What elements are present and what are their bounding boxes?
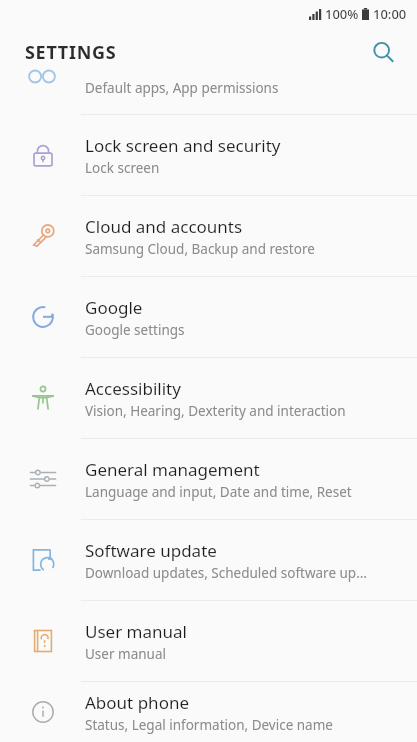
staticText: Download updates, Scheduled software up…: [85, 564, 367, 582]
staticText: General management: [85, 458, 260, 481]
staticText: Accessibility: [85, 377, 181, 400]
staticText: 10:00: [373, 5, 407, 23]
staticText: 100%: [325, 5, 359, 23]
button[interactable]: General management: [0, 439, 417, 519]
staticText: User manual: [85, 620, 187, 643]
staticText: Status, Legal information, Device name: [85, 716, 333, 734]
staticText: Vision, Hearing, Dexterity and interacti…: [85, 402, 346, 420]
button[interactable]: Search: [363, 32, 403, 72]
staticText: Lock screen and security: [85, 134, 281, 157]
staticText: Cloud and accounts: [85, 215, 243, 238]
staticText: User manual: [85, 645, 166, 663]
staticText: Lock screen: [85, 159, 160, 177]
button[interactable]: About phone: [0, 682, 417, 742]
staticText: Google: [85, 296, 143, 319]
button[interactable]: Cloud and accounts: [0, 196, 417, 276]
button[interactable]: Software update: [0, 520, 417, 600]
button[interactable]: User manual: [0, 601, 417, 681]
staticText: Software update: [85, 539, 217, 562]
button[interactable]: Lock screen and security: [0, 115, 417, 195]
button[interactable]: Accessibility: [0, 358, 417, 438]
staticText: Google settings: [85, 321, 185, 339]
staticText: SETTINGS: [25, 40, 117, 65]
staticText: About phone: [85, 691, 190, 714]
staticText: Language and input, Date and time, Reset: [85, 483, 352, 501]
button[interactable]: Google: [0, 277, 417, 357]
staticText: Default apps, App permissions: [85, 79, 279, 97]
staticText: Samsung Cloud, Backup and restore: [85, 240, 315, 258]
button[interactable]: Default apps, App permissions: [0, 76, 417, 114]
